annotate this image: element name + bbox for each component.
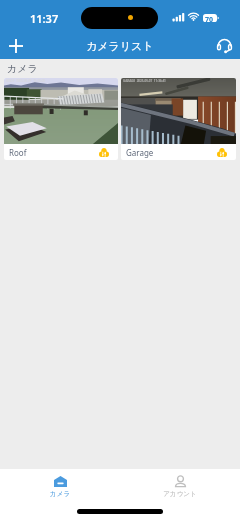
staticText: アカウント <box>163 490 197 498</box>
staticText: Roof <box>9 147 27 158</box>
staticText: カメラ <box>50 490 70 498</box>
staticText: カメラ <box>7 62 38 75</box>
staticText: カメラリスト <box>86 39 154 53</box>
button[interactable]: ROOF 2025-05-07 11:36:55 <box>4 78 118 160</box>
button[interactable]: Add camera <box>0 32 32 59</box>
button[interactable]: GARAGE 2025-05-07 11:36:41 <box>121 78 236 160</box>
staticText: 70 <box>205 15 214 25</box>
staticText: ROOF 2025-05-07 11:36:55 <box>6 79 46 83</box>
button[interactable]: アカウント <box>120 469 240 505</box>
staticText: 11:37 <box>30 11 59 26</box>
staticText: GARAGE 2025-05-07 11:36:41 <box>123 79 166 83</box>
button[interactable]: Support <box>208 32 240 59</box>
staticText: Garage <box>126 147 154 158</box>
button[interactable]: カメラ <box>0 469 120 505</box>
